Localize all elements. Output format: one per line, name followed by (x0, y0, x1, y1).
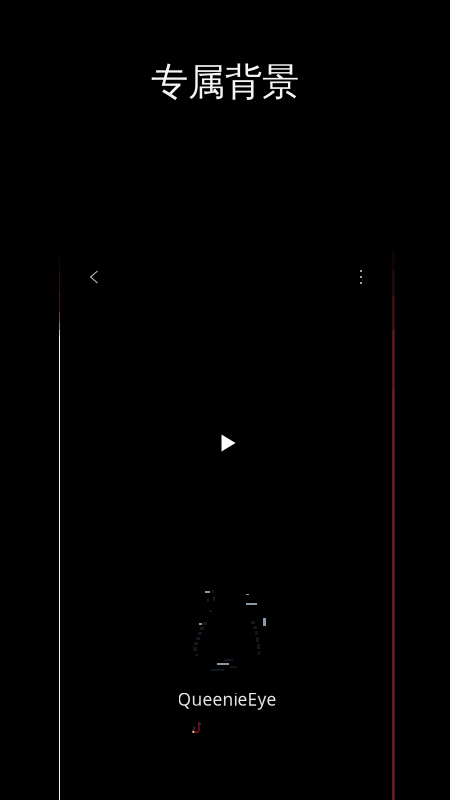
staticText: 专属背景 (151, 59, 299, 105)
staticText: QueenieEye (177, 687, 276, 710)
button[interactable]: More options (339, 255, 383, 299)
button[interactable]: Play (202, 417, 254, 469)
button[interactable]: Back (71, 255, 115, 299)
